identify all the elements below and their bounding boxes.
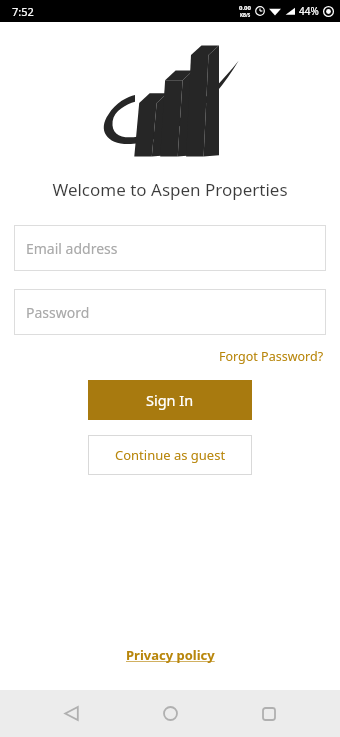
staticText: Privacy policy bbox=[126, 646, 215, 664]
button[interactable]: Sign In bbox=[88, 380, 252, 420]
staticText: 7:52 bbox=[12, 4, 34, 19]
button[interactable]: Continue as guest bbox=[88, 435, 252, 475]
staticText: Password bbox=[26, 303, 90, 322]
button[interactable]: Email address bbox=[14, 225, 326, 271]
staticText: Forgot Password? bbox=[219, 348, 324, 365]
button[interactable]: Privacy policy bbox=[122, 642, 219, 668]
staticText: Continue as guest bbox=[115, 446, 226, 464]
button[interactable]: Recent apps bbox=[241, 690, 297, 737]
button[interactable]: Forgot Password? bbox=[217, 346, 326, 367]
staticText: 44% bbox=[299, 4, 319, 18]
button[interactable]: Password bbox=[14, 289, 326, 335]
staticText: KB/S bbox=[240, 12, 251, 18]
staticText: Welcome to Aspen Properties bbox=[52, 178, 288, 201]
staticText: Sign In bbox=[146, 390, 194, 410]
staticText: 0.00 bbox=[239, 4, 251, 12]
staticText: Email address bbox=[26, 239, 118, 258]
button[interactable]: Back bbox=[43, 690, 99, 737]
button[interactable]: Home bbox=[142, 690, 198, 737]
